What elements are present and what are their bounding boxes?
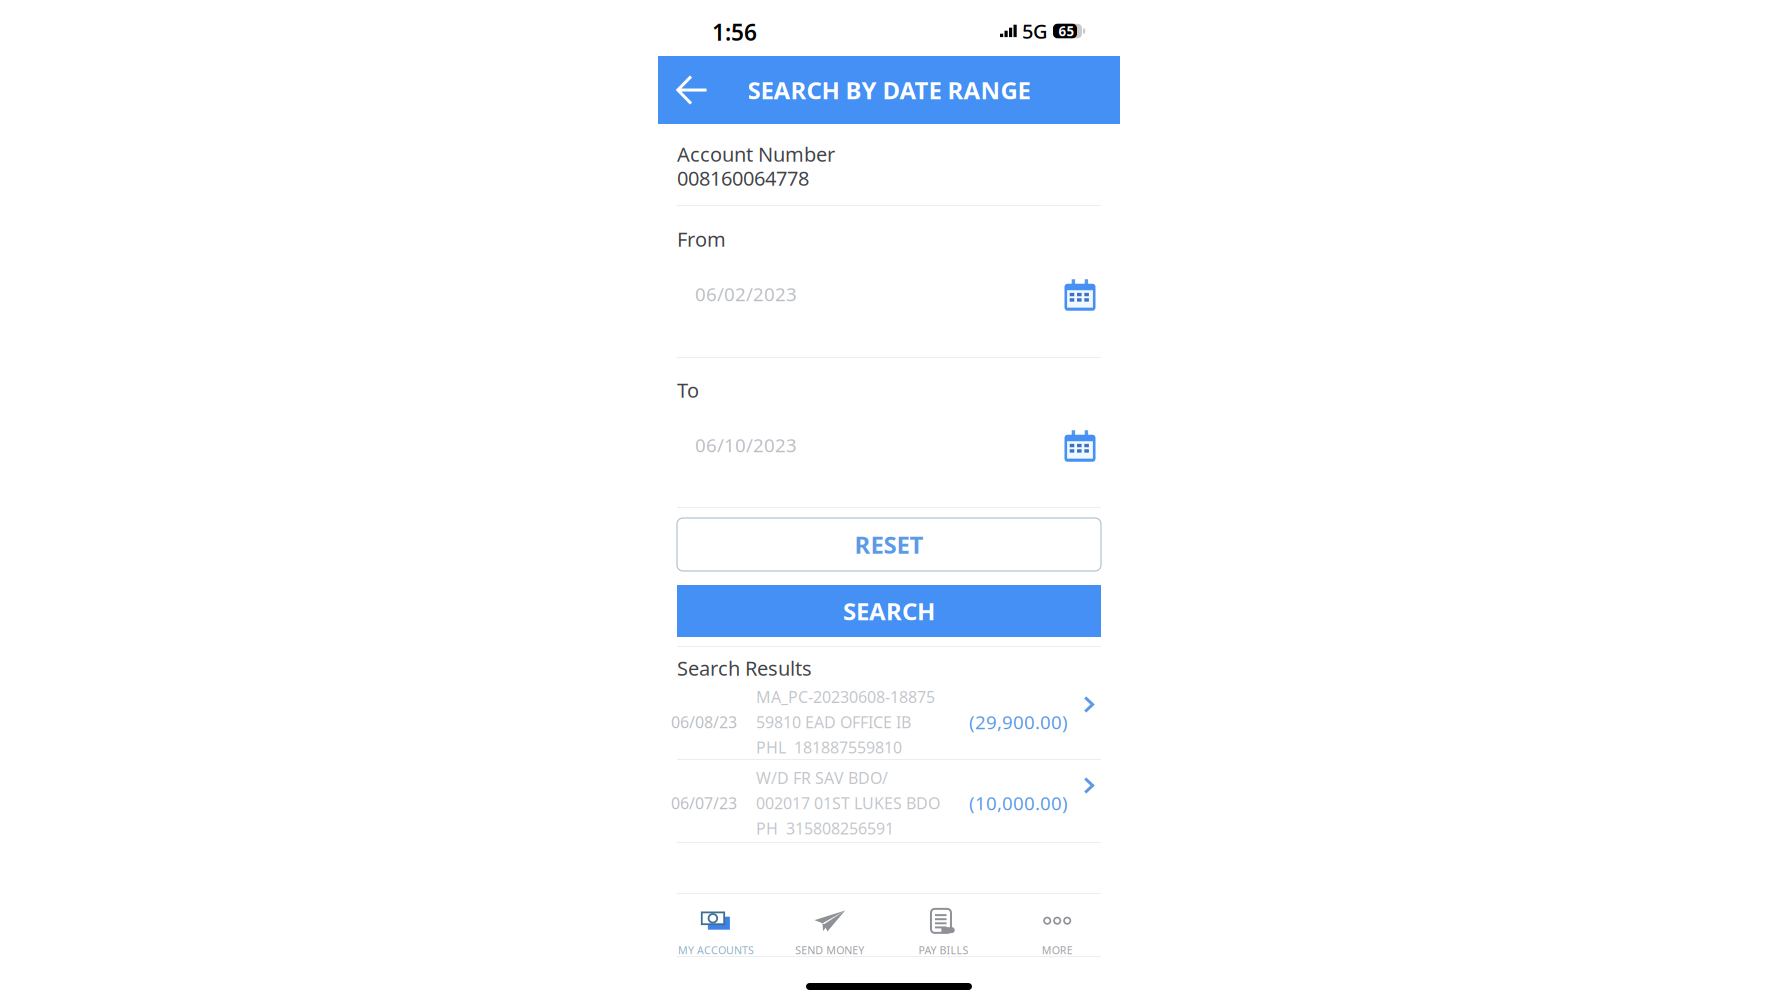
staticText: 1:56 [712, 17, 757, 47]
staticText: (29,900.00) [969, 710, 1068, 734]
staticText: MA_PC-20230608-18875 [756, 686, 935, 707]
staticText: PHL 181887559810 [756, 737, 902, 758]
button[interactable]: Choose end date [1056, 422, 1104, 470]
staticText: MORE [1042, 943, 1073, 957]
button[interactable]: SEND MONEY [773, 894, 887, 956]
staticText: From [677, 226, 726, 252]
staticText: 002017 01ST LUKES BDO [756, 792, 940, 814]
button[interactable]: RESET [677, 518, 1101, 571]
button[interactable]: MORE [1000, 894, 1114, 956]
staticText: PAY BILLS [918, 943, 968, 957]
button[interactable]: PAY BILLS [886, 894, 1000, 956]
staticText: (10,000.00) [969, 791, 1068, 815]
staticText: To [677, 377, 699, 403]
button[interactable]: SEARCH [677, 585, 1101, 637]
button[interactable]: Choose start date [1056, 271, 1104, 319]
button[interactable]: 06/08/23 [677, 686, 1101, 758]
button[interactable]: Back [660, 56, 724, 124]
staticText: W/D FR SAV BDO/ [756, 767, 888, 788]
staticText: RESET [854, 529, 923, 560]
staticText: 06/08/23 [671, 711, 737, 733]
staticText: 06/07/23 [671, 792, 737, 814]
staticText: 59810 EAD OFFICE IB [756, 711, 911, 733]
staticText: Search Results [677, 655, 812, 681]
staticText: MY ACCOUNTS [678, 943, 754, 957]
button[interactable]: 06/07/23 [677, 766, 1101, 840]
staticText: SEARCH [843, 595, 935, 627]
staticText: Account Number [677, 141, 835, 167]
staticText: 5G [1022, 18, 1048, 44]
staticText: SEARCH BY DATE RANGE [747, 74, 1030, 106]
staticText: PH 315808256591 [756, 818, 894, 839]
staticText: 008160064778 [677, 165, 809, 191]
button[interactable]: MY ACCOUNTS [659, 894, 773, 956]
staticText: 06/10/2023 [695, 433, 797, 457]
staticText: SEND MONEY [795, 943, 864, 957]
staticText: 65 [1058, 22, 1074, 40]
staticText: 06/02/2023 [695, 282, 797, 306]
